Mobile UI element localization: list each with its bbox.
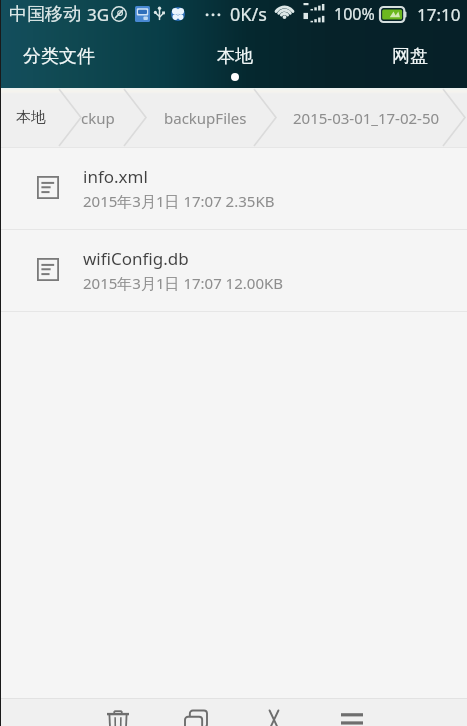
- staticText: 本地: [16, 108, 46, 127]
- staticText: ckup: [81, 108, 115, 128]
- staticText: 网盘: [392, 45, 428, 68]
- staticText: 17:10: [417, 3, 461, 26]
- staticText: 分类文件: [23, 45, 95, 68]
- button[interactable]: 本地: [16, 88, 46, 147]
- staticText: info.xml: [83, 165, 148, 188]
- button[interactable]: 分类文件: [0, 28, 117, 88]
- button[interactable]: Delete: [94, 698, 142, 726]
- staticText: 中国移动: [9, 3, 81, 26]
- button[interactable]: ckup: [81, 88, 115, 147]
- button[interactable]: backupFiles: [164, 88, 247, 147]
- staticText: 2015-03-01_17-02-50: [293, 108, 440, 128]
- staticText: 2015年3月1日 17:07 2.35KB: [83, 191, 275, 211]
- staticText: 3G: [87, 3, 110, 26]
- button[interactable]: 本地: [117, 28, 352, 88]
- button[interactable]: 2015-03-01_17-02-50: [293, 88, 440, 147]
- button[interactable]: 网盘: [352, 28, 467, 88]
- staticText: 0K/s: [230, 2, 267, 27]
- button[interactable]: wifiConfig.db: [0, 230, 467, 312]
- staticText: 2015年3月1日 17:07 12.00KB: [83, 273, 283, 293]
- staticText: backupFiles: [164, 108, 247, 128]
- staticText: 本地: [217, 45, 253, 68]
- staticText: 100%: [334, 3, 375, 25]
- button[interactable]: info.xml: [0, 148, 467, 230]
- button[interactable]: Cut: [250, 698, 298, 726]
- button[interactable]: More: [328, 698, 376, 726]
- staticText: wifiConfig.db: [83, 247, 189, 270]
- button[interactable]: Copy: [172, 698, 220, 726]
